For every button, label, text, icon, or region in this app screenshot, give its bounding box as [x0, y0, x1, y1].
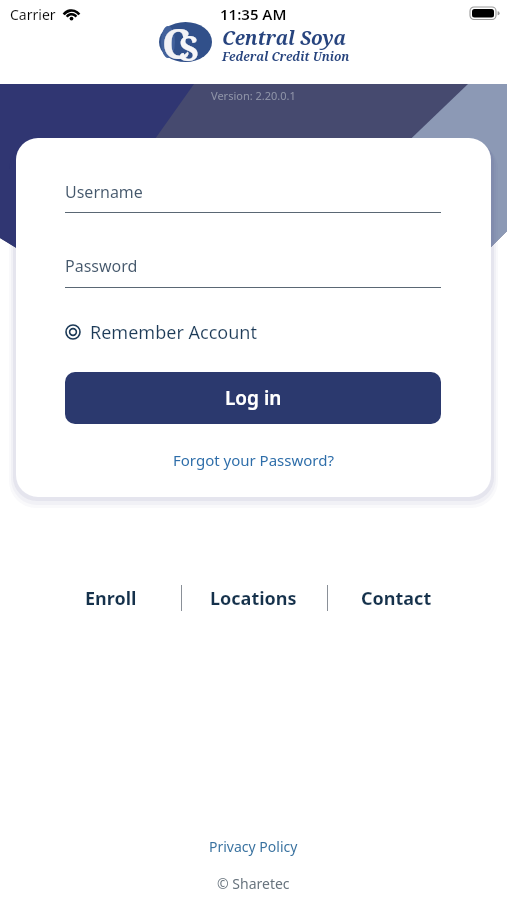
- button[interactable]: Contact: [336, 584, 456, 612]
- staticText: S: [179, 25, 199, 71]
- staticText: Carrier: [10, 5, 56, 24]
- button[interactable]: Remember Account: [63, 319, 303, 345]
- staticText: Central Soya: [222, 25, 347, 51]
- staticText: Log in: [225, 385, 282, 411]
- button[interactable]: Password: [65, 255, 441, 285]
- button[interactable]: Log in: [65, 372, 441, 424]
- button[interactable]: Enroll: [51, 584, 171, 612]
- button[interactable]: Privacy Policy: [0, 836, 507, 856]
- staticText: Federal Credit Union: [222, 48, 350, 64]
- button[interactable]: Locations: [193, 584, 313, 612]
- staticText: Locations: [210, 586, 297, 611]
- staticText: C: [162, 14, 191, 71]
- staticText: Password: [65, 255, 138, 277]
- staticText: © Sharetec: [217, 874, 290, 893]
- staticText: Username: [65, 181, 143, 203]
- staticText: Privacy Policy: [209, 837, 298, 856]
- staticText: Enroll: [85, 586, 137, 611]
- staticText: Version: 2.20.0.1: [211, 88, 296, 103]
- staticText: Forgot your Password?: [173, 450, 334, 470]
- button[interactable]: Forgot your Password?: [16, 448, 491, 472]
- staticText: 11:35 AM: [220, 4, 287, 24]
- staticText: Remember Account: [90, 320, 257, 345]
- staticText: Contact: [361, 586, 432, 611]
- button[interactable]: Username: [65, 181, 441, 211]
